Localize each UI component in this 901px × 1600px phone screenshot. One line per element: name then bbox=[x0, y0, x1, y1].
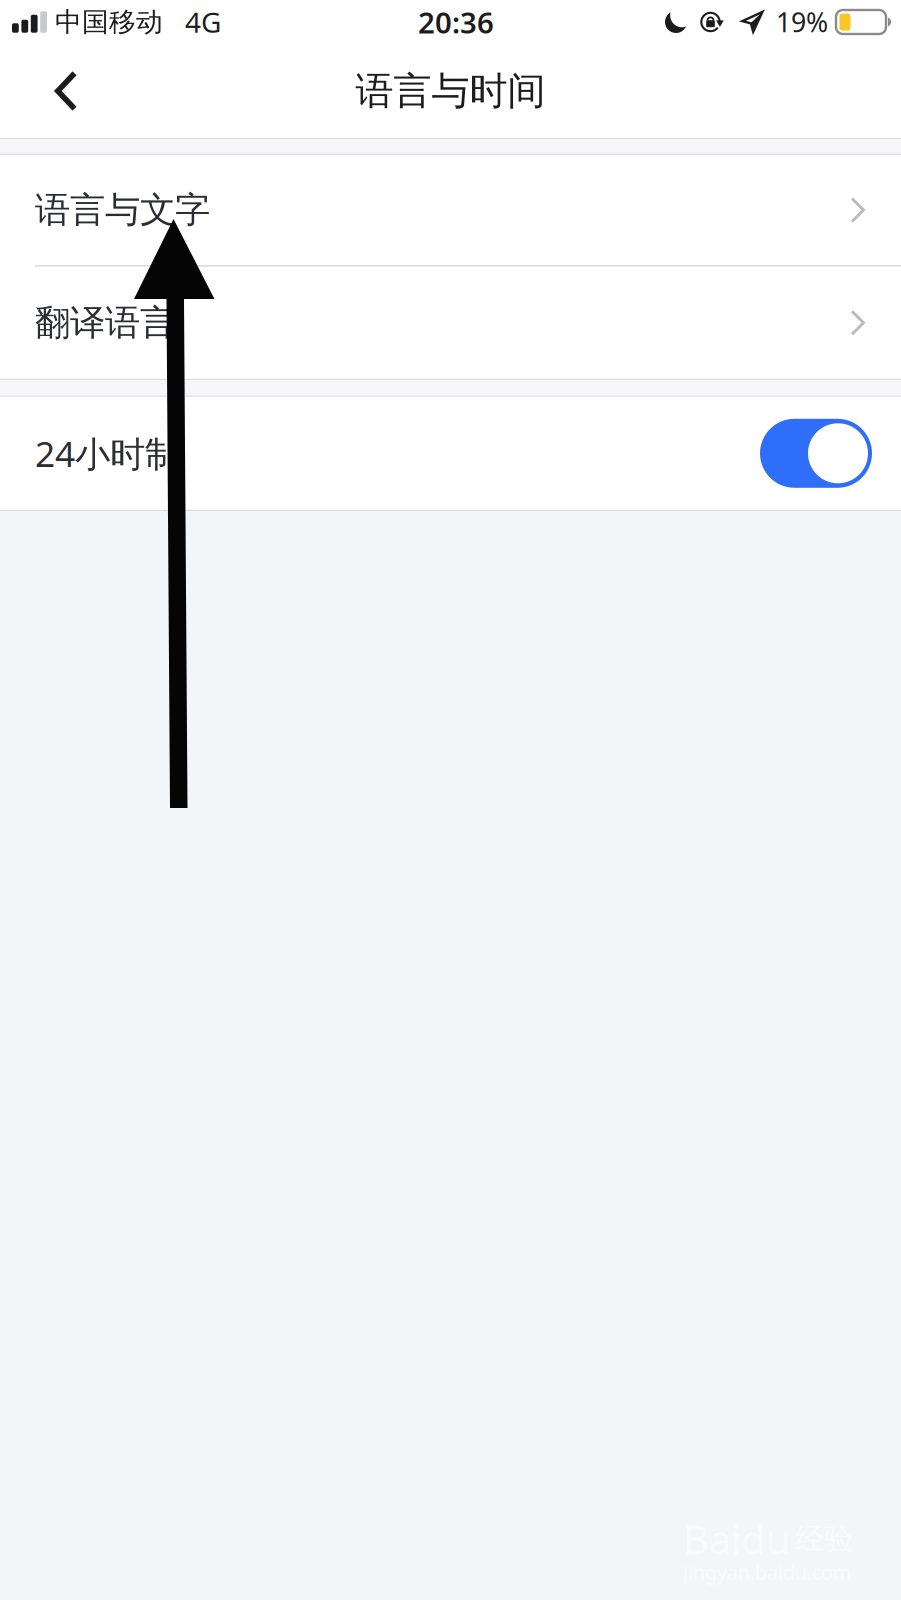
button[interactable]: 语言与文字 bbox=[0, 155, 901, 265]
button[interactable]: 24小时制 bbox=[0, 397, 901, 510]
staticText: 19% bbox=[776, 4, 828, 40]
button[interactable]: 翻译语言 bbox=[0, 267, 901, 379]
staticText: 20:36 bbox=[418, 2, 494, 41]
staticText: 24小时制 bbox=[35, 429, 180, 477]
staticText: 4G bbox=[185, 3, 221, 41]
button[interactable]: 返回 bbox=[0, 44, 102, 138]
staticText: 翻译语言 bbox=[35, 300, 175, 345]
staticText: 语言与文字 bbox=[35, 188, 210, 232]
staticText: 中国移动 bbox=[55, 6, 163, 38]
staticText: 语言与时间 bbox=[355, 67, 545, 115]
